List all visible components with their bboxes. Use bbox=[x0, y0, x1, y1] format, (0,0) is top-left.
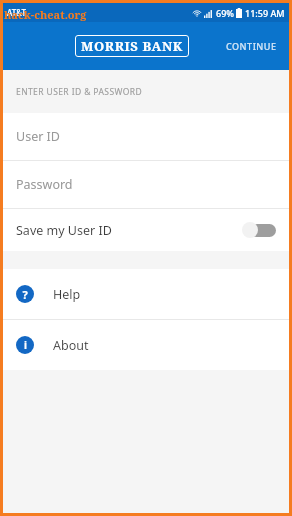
staticText: Password bbox=[16, 176, 73, 193]
staticText: AT&T bbox=[7, 7, 26, 18]
other: About bbox=[16, 336, 34, 354]
button[interactable]: CONTINUE bbox=[220, 32, 283, 60]
button[interactable]: User ID bbox=[3, 113, 289, 161]
other: Help bbox=[16, 285, 34, 303]
button[interactable]: About bbox=[3, 320, 289, 370]
staticText: About bbox=[53, 337, 89, 354]
staticText: 11:59 AM bbox=[245, 7, 285, 19]
staticText: 69% bbox=[216, 7, 234, 19]
button[interactable]: Password bbox=[3, 161, 289, 209]
button[interactable]: MORRIS BANK bbox=[81, 37, 183, 55]
staticText: hack-cheat.org bbox=[4, 7, 87, 22]
staticText: ? bbox=[22, 287, 28, 302]
staticText: i bbox=[24, 338, 27, 352]
staticText: ENTER USER ID & PASSWORD bbox=[16, 86, 143, 98]
staticText: Help bbox=[53, 286, 81, 303]
staticText: Save my User ID bbox=[16, 222, 112, 239]
staticText: MORRIS BANK bbox=[81, 37, 183, 55]
staticText: User ID bbox=[16, 128, 60, 145]
staticText: CONTINUE bbox=[226, 40, 277, 52]
button[interactable]: Save my User ID bbox=[3, 209, 289, 251]
button[interactable]: Help bbox=[3, 269, 289, 319]
